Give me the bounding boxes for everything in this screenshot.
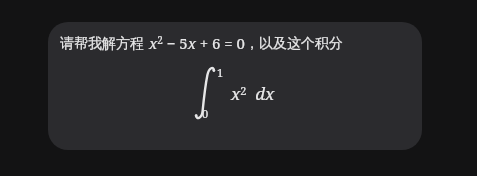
staticText: 1 — [217, 65, 224, 80]
staticText: ，以及这个积分 — [245, 35, 343, 53]
staticText: x2 dx — [231, 82, 275, 105]
staticText: x2 − 5x + 6 = 0 — [149, 33, 245, 53]
staticText: 请帮我解方程 — [60, 35, 144, 53]
staticText: 0 — [202, 106, 209, 121]
button[interactable]: 请帮我解方程 — [48, 22, 422, 150]
